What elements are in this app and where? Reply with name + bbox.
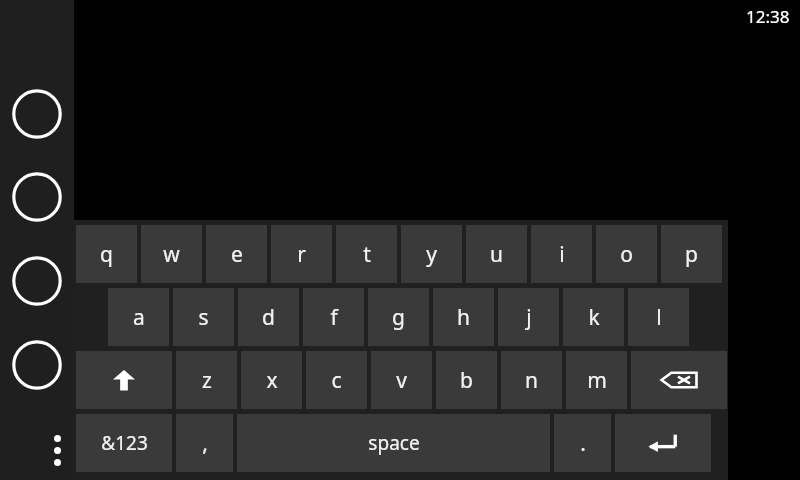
button[interactable]: n <box>501 351 562 409</box>
button[interactable]: h <box>433 288 494 346</box>
button[interactable]: k <box>563 288 624 346</box>
button[interactable]: Button four <box>12 340 62 390</box>
staticText: c <box>331 366 342 395</box>
button[interactable]: s <box>173 288 234 346</box>
staticText: . <box>580 429 586 458</box>
staticText: &123 <box>101 430 148 456</box>
staticText: m <box>587 366 607 395</box>
staticText: q <box>100 240 113 269</box>
button[interactable]: . <box>554 414 611 472</box>
staticText: p <box>685 240 698 269</box>
staticText: x <box>266 366 278 395</box>
button[interactable]: Shift <box>76 351 172 409</box>
staticText: w <box>163 240 180 269</box>
staticText: h <box>457 303 470 332</box>
button[interactable]: Button three <box>12 256 62 306</box>
button[interactable]: q <box>76 225 137 283</box>
staticText: s <box>198 303 209 332</box>
staticText: z <box>202 366 212 395</box>
staticText: 12:38 <box>746 5 790 28</box>
button[interactable]: a <box>108 288 169 346</box>
button[interactable]: p <box>661 225 722 283</box>
staticText: u <box>490 240 503 269</box>
button[interactable]: e <box>206 225 267 283</box>
button[interactable]: space <box>237 414 550 472</box>
button[interactable]: g <box>368 288 429 346</box>
staticText: k <box>588 303 600 332</box>
button[interactable]: l <box>628 288 689 346</box>
button[interactable]: x <box>241 351 302 409</box>
staticText: g <box>392 303 405 332</box>
button[interactable]: d <box>238 288 299 346</box>
staticText: d <box>262 303 275 332</box>
button[interactable]: w <box>141 225 202 283</box>
staticText: e <box>231 240 243 269</box>
button[interactable]: Button one <box>12 89 62 139</box>
staticText: n <box>525 366 538 395</box>
staticText: y <box>426 240 437 269</box>
button[interactable]: t <box>336 225 397 283</box>
button[interactable]: o <box>596 225 657 283</box>
button[interactable]: , <box>176 414 233 472</box>
button[interactable]: j <box>498 288 559 346</box>
staticText: i <box>559 240 565 269</box>
button[interactable]: Enter <box>615 414 711 472</box>
staticText: , <box>202 429 208 458</box>
button[interactable]: f <box>303 288 364 346</box>
button[interactable]: y <box>401 225 462 283</box>
button[interactable]: &123 <box>76 414 172 472</box>
staticText: r <box>297 240 306 269</box>
button[interactable]: z <box>176 351 237 409</box>
staticText: b <box>460 366 473 395</box>
staticText: o <box>620 240 633 269</box>
staticText: j <box>526 303 532 332</box>
button[interactable]: m <box>566 351 627 409</box>
staticText: l <box>656 303 662 332</box>
button[interactable]: Backspace <box>631 351 727 409</box>
button[interactable]: u <box>466 225 527 283</box>
staticText: f <box>330 303 338 332</box>
button[interactable]: v <box>371 351 432 409</box>
button[interactable]: r <box>271 225 332 283</box>
staticText: space <box>368 430 420 456</box>
button[interactable]: b <box>436 351 497 409</box>
button[interactable]: c <box>306 351 367 409</box>
staticText: t <box>363 240 371 269</box>
staticText: v <box>396 366 407 395</box>
button[interactable]: Button two <box>12 172 62 222</box>
button[interactable]: More options <box>37 420 77 480</box>
button[interactable]: i <box>531 225 592 283</box>
staticText: a <box>133 303 145 332</box>
